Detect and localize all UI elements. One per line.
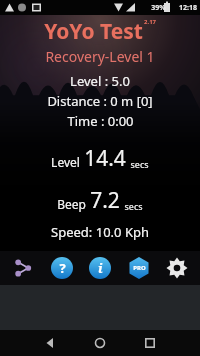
staticText: Level xyxy=(51,154,80,170)
button[interactable]: Settings xyxy=(164,255,190,281)
staticText: 2.17 xyxy=(144,18,156,26)
staticText: 12:18 xyxy=(179,3,197,13)
staticText: ? xyxy=(59,259,66,277)
staticText: PRO xyxy=(133,264,146,272)
staticText: secs xyxy=(130,158,149,170)
staticText: 7.2 xyxy=(90,186,120,215)
staticText: 14.4 xyxy=(84,144,126,173)
button[interactable]: Information xyxy=(87,255,113,281)
staticText: secs xyxy=(124,200,143,212)
staticText: i xyxy=(98,259,103,277)
staticText: YoYo Test xyxy=(44,17,143,46)
button[interactable]: Share xyxy=(10,255,36,281)
staticText: Distance : 0 m [0] xyxy=(47,92,153,110)
staticText: 39% xyxy=(151,3,166,13)
staticText: Level : 5.0 xyxy=(70,72,130,90)
staticText: Beep xyxy=(57,196,86,212)
staticText: Time : 0:00 xyxy=(67,112,134,130)
button[interactable]: Help xyxy=(49,255,75,281)
staticText: Recovery-Level 1 xyxy=(45,47,155,66)
staticText: Speed: 10.0 Kph xyxy=(51,223,149,241)
button[interactable]: Pro version xyxy=(126,255,152,281)
